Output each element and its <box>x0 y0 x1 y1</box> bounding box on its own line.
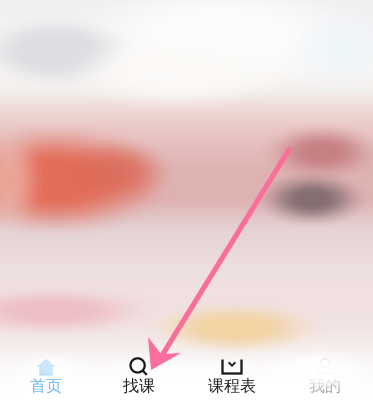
staticText: 首页 <box>30 376 62 396</box>
staticText: 找课 <box>123 376 155 396</box>
button[interactable]: 我的 <box>278 353 371 397</box>
button[interactable]: 课程表 <box>185 353 278 397</box>
staticText: 我的 <box>309 376 341 396</box>
staticText: 课程表 <box>208 376 256 396</box>
button[interactable]: 首页 <box>0 353 92 397</box>
button[interactable]: 找课 <box>92 353 185 397</box>
